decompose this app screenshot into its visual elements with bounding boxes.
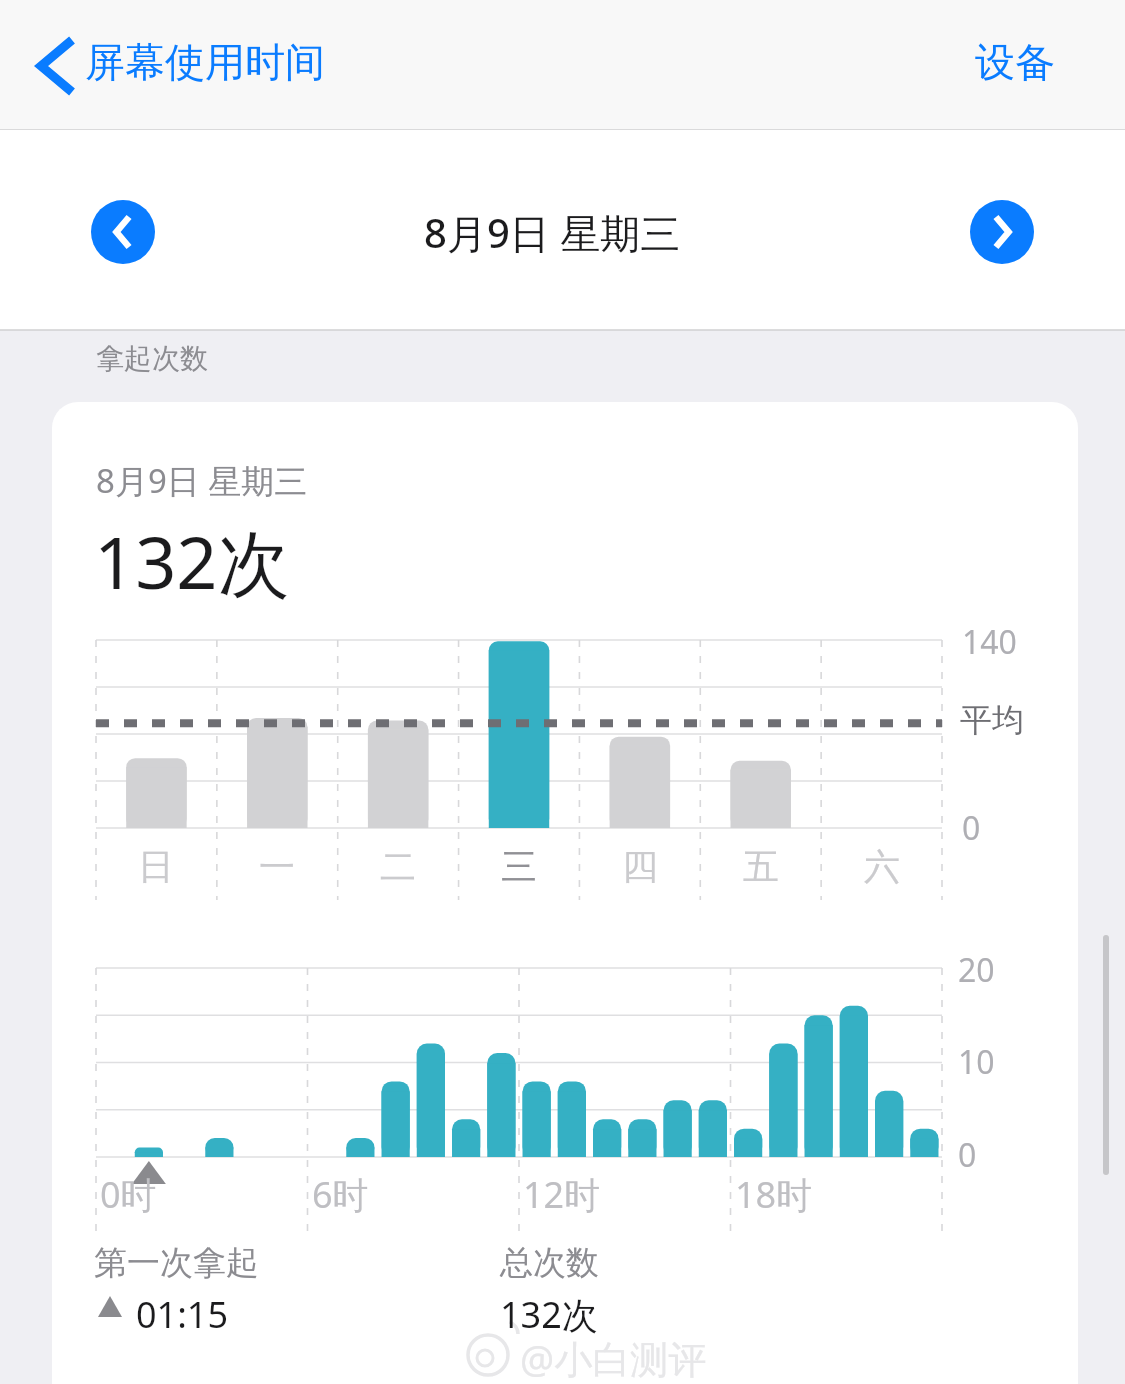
button[interactable] bbox=[950, 20, 1100, 112]
staticText: 12时 bbox=[523, 1170, 601, 1219]
staticText: 01:15 bbox=[136, 1290, 229, 1339]
staticText: 132次 bbox=[94, 512, 290, 610]
staticText: 6时 bbox=[312, 1170, 369, 1219]
button[interactable]: Next day bbox=[963, 193, 1041, 271]
button[interactable]: Previous day bbox=[84, 193, 162, 271]
staticText: 0 bbox=[962, 806, 981, 850]
staticText: 屏幕使用时间 bbox=[85, 37, 325, 87]
button[interactable] bbox=[20, 20, 420, 112]
staticText: 8月9日 星期三 bbox=[96, 458, 308, 503]
staticText: 132次 bbox=[500, 1290, 598, 1339]
staticText: 四 bbox=[622, 844, 658, 889]
staticText: 一 bbox=[259, 844, 295, 889]
staticText: 8月9日 星期三 bbox=[424, 205, 681, 260]
staticText: 第一次拿起 bbox=[94, 1242, 259, 1284]
staticText: 0时 bbox=[100, 1170, 157, 1219]
staticText: 10 bbox=[958, 1040, 995, 1084]
staticText: 六 bbox=[864, 844, 900, 889]
staticText: 日 bbox=[138, 844, 174, 889]
staticText: 平均 bbox=[960, 700, 1024, 740]
staticText: 20 bbox=[958, 948, 995, 992]
staticText: 二 bbox=[380, 844, 416, 889]
staticText: 18时 bbox=[735, 1170, 813, 1219]
button[interactable] bbox=[52, 402, 1078, 1384]
staticText: @小白测评 bbox=[520, 1332, 707, 1384]
staticText: 总次数 bbox=[500, 1242, 599, 1284]
staticText: 三 bbox=[501, 844, 537, 889]
staticText: 0 bbox=[958, 1133, 977, 1177]
staticText: 拿起次数 bbox=[96, 341, 208, 376]
staticText: 140 bbox=[962, 620, 1017, 664]
staticText: 设备 bbox=[975, 37, 1055, 87]
staticText: 五 bbox=[743, 844, 779, 889]
